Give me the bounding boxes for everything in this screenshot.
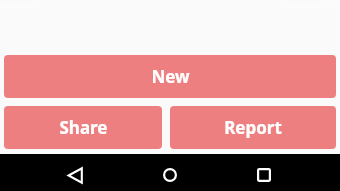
button[interactable]: Report xyxy=(170,106,336,149)
button[interactable]: Share xyxy=(4,106,162,149)
button[interactable]: Home xyxy=(152,161,187,189)
button[interactable]: Recent apps xyxy=(246,161,281,189)
button[interactable]: Back xyxy=(58,161,93,189)
staticText: New xyxy=(151,65,190,88)
button[interactable]: New xyxy=(4,55,336,98)
staticText: Report xyxy=(224,116,282,139)
staticText: Share xyxy=(59,116,108,139)
